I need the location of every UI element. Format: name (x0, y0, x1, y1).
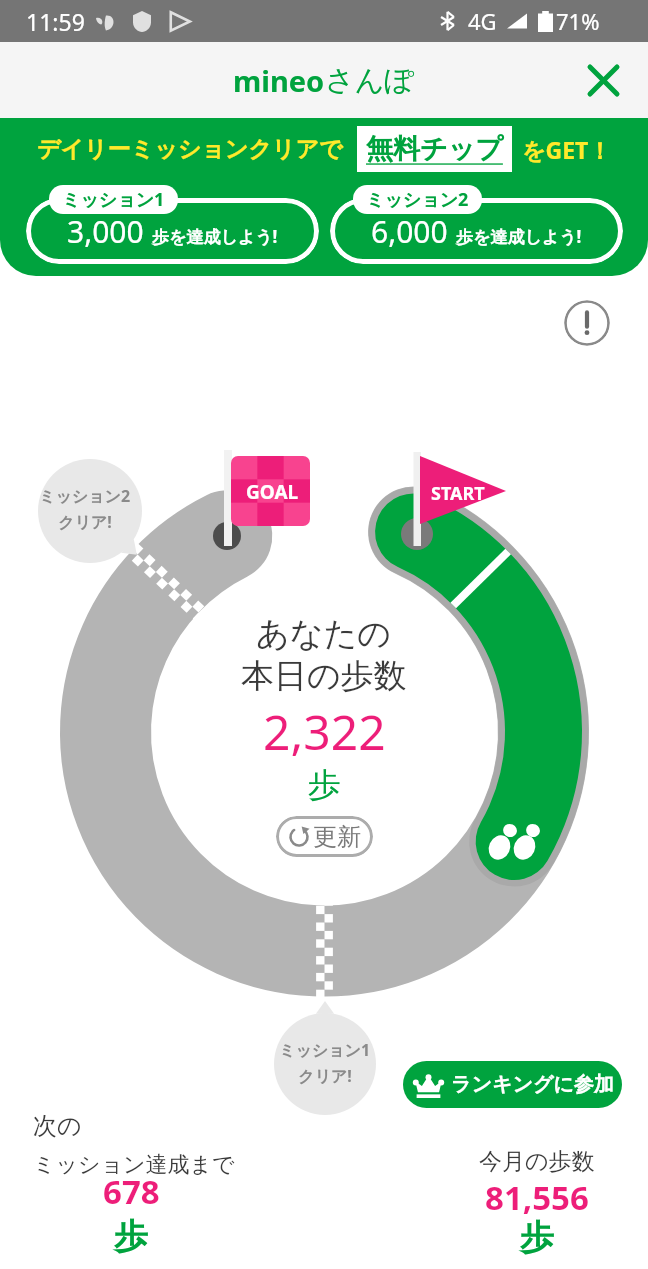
staticText: をGET！ (522, 134, 612, 165)
staticText: 更新 (313, 822, 361, 852)
staticText: 本日の歩数 (241, 655, 407, 697)
staticText: 6,000 (371, 211, 448, 252)
button[interactable]: 3,000 (26, 198, 319, 264)
staticText: 次の (33, 1111, 82, 1141)
staticText: 678 (103, 1169, 160, 1214)
staticText: あなたの (256, 613, 392, 655)
staticText: 3,000 (67, 211, 144, 252)
staticText: GOAL (246, 479, 299, 505)
staticText: 歩を達成しよう! (152, 225, 278, 248)
button[interactable]: 6,000 (330, 198, 623, 264)
staticText: ミッション達成まで (33, 1151, 235, 1179)
staticText: 歩 (308, 764, 341, 806)
staticText: ミッション2 (39, 485, 131, 507)
staticText: 歩 (114, 1215, 148, 1258)
staticText: さんぽ (325, 62, 415, 99)
staticText: 歩 (520, 1216, 554, 1259)
staticText: クリア! (58, 511, 112, 533)
staticText: ランキングに参加 (451, 1072, 614, 1097)
staticText: 71% (556, 6, 600, 36)
staticText: 4G (468, 6, 497, 36)
staticText: 81,556 (485, 1175, 589, 1220)
staticText: 歩を達成しよう! (456, 225, 582, 248)
staticText: ミッション1 (62, 187, 165, 212)
button[interactable]: 更新 (276, 816, 373, 857)
staticText: デイリーミッションクリアで (37, 135, 343, 164)
staticText: mineo (233, 61, 325, 100)
staticText: START (431, 481, 485, 506)
staticText: ミッション2 (366, 187, 469, 212)
staticText: 無料チップ (366, 132, 503, 166)
button[interactable]: ランキングに参加 (403, 1061, 622, 1108)
staticText: 11:59 (26, 6, 85, 37)
staticText: ミッション1 (279, 1039, 371, 1061)
staticText: クリア! (298, 1065, 352, 1087)
staticText: 2,322 (263, 699, 386, 764)
button[interactable]: Close (580, 57, 626, 103)
staticText: 今月の歩数 (479, 1147, 595, 1176)
button[interactable]: Information (564, 300, 610, 346)
